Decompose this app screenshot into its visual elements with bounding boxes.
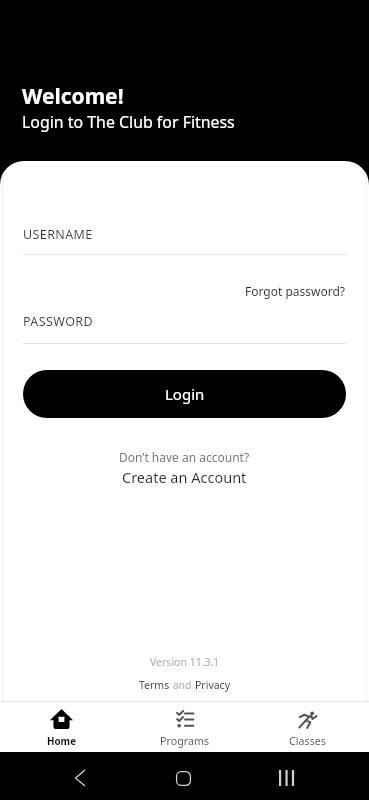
button[interactable]: Create an Account — [122, 467, 247, 487]
button[interactable]: Classes — [246, 701, 369, 752]
staticText: USERNAME — [23, 226, 93, 243]
button[interactable]: Forgot password? — [245, 283, 346, 299]
button[interactable]: Privacy — [195, 678, 231, 692]
button[interactable]: Back — [62, 760, 98, 796]
staticText: Don’t have an account? — [119, 449, 250, 465]
button[interactable]: Home — [0, 701, 123, 752]
staticText: Welcome! — [22, 82, 124, 111]
staticText: PASSWORD — [23, 313, 94, 330]
staticText: Programs — [160, 734, 210, 749]
button[interactable]: Programs — [123, 701, 246, 752]
staticText: Create an Account — [122, 467, 247, 487]
button[interactable]: Login — [23, 370, 346, 418]
staticText: Home — [47, 735, 77, 748]
button[interactable]: Terms — [139, 678, 170, 692]
button[interactable]: Recent apps — [268, 760, 304, 796]
staticText: Classes — [289, 734, 326, 749]
staticText: Login to The Club for Fitness — [22, 111, 235, 133]
staticText: and — [170, 678, 195, 692]
staticText: Forgot password? — [245, 283, 346, 299]
staticText: Login — [165, 384, 205, 404]
button[interactable]: Home — [165, 760, 201, 796]
staticText: Version 11.3.1 — [150, 655, 220, 669]
